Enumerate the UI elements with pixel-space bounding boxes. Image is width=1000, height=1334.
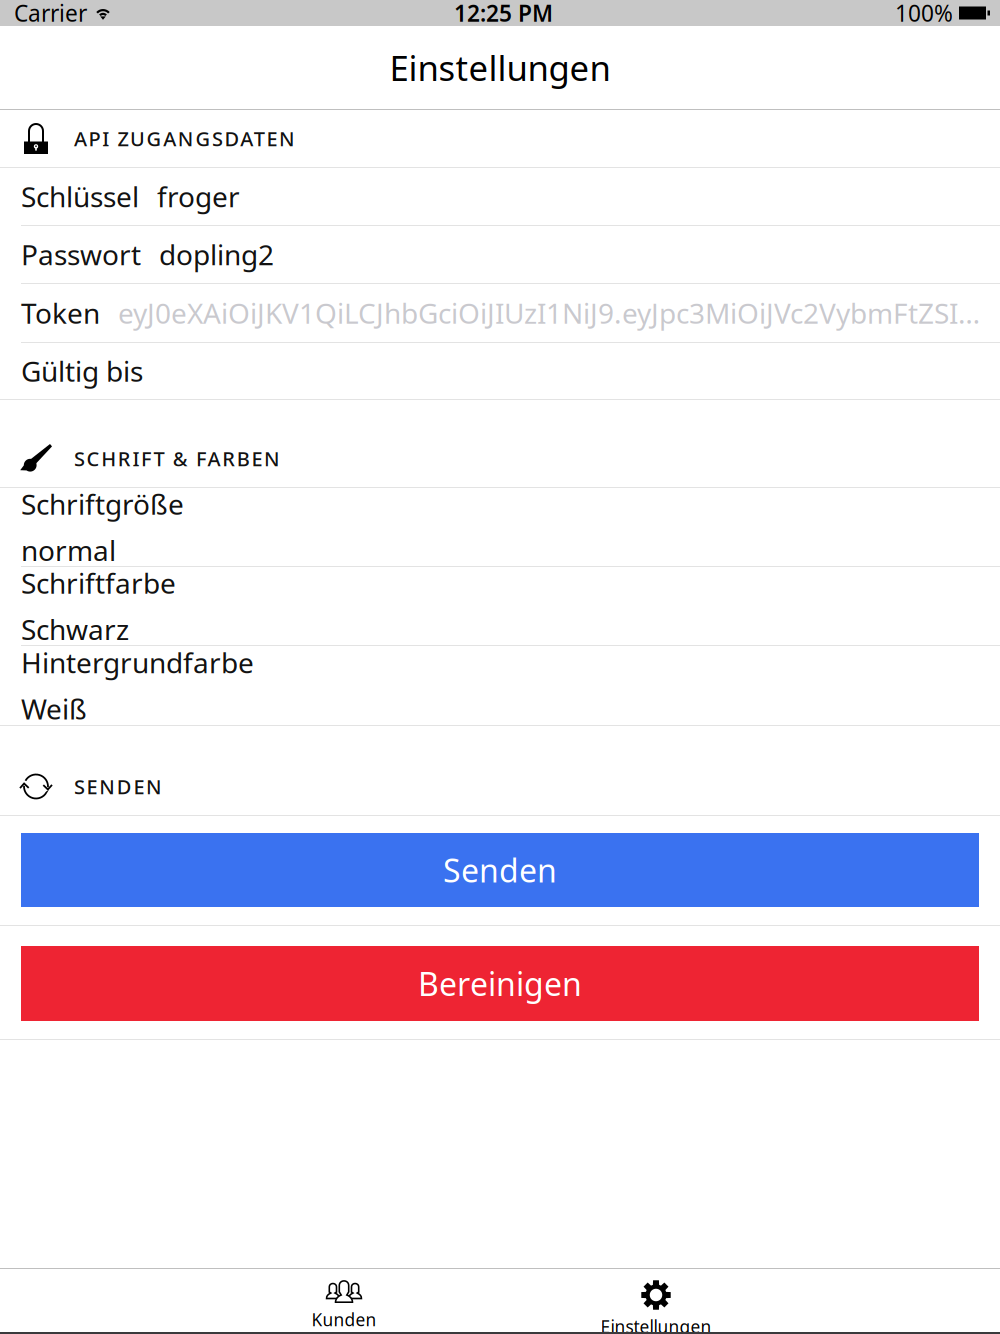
button[interactable]: Senden	[21, 833, 979, 907]
button[interactable]: Schriftgröße	[0, 488, 1000, 566]
staticText: SENDEN	[74, 773, 162, 800]
staticText: Bereinigen	[418, 962, 582, 1005]
staticText: API ZUGANGSDATEN	[74, 125, 295, 152]
staticText: SCHRIFT & FARBEN	[74, 445, 280, 472]
button[interactable]: Einstellungen	[561, 1268, 751, 1333]
staticText: Hintergrundfarbe	[21, 644, 254, 681]
button[interactable]: Kunden	[249, 1268, 439, 1333]
staticText: Senden	[443, 849, 557, 891]
button[interactable]: Gültig bis	[0, 343, 1000, 399]
staticText: eyJ0eXAiOiJKV1QiLCJhbGciOiJIUzI1NiJ9.eyJ…	[118, 294, 982, 332]
staticText: froger	[157, 178, 240, 215]
button[interactable]: Passwort	[0, 226, 1000, 283]
staticText: Einstellungen	[600, 1315, 711, 1334]
staticText: Gültig bis	[21, 352, 143, 390]
staticText: Schriftfarbe	[21, 564, 176, 601]
button[interactable]: Schriftfarbe	[0, 567, 1000, 645]
staticText: normal	[21, 531, 116, 569]
staticText: 12:25 PM	[454, 0, 553, 28]
button[interactable]: Schlüssel	[0, 168, 1000, 225]
staticText: 100%	[895, 0, 953, 28]
staticText: Weiß	[21, 690, 87, 727]
staticText: Passwort	[21, 236, 141, 273]
staticText: Token	[21, 294, 100, 332]
staticText: Schwarz	[21, 610, 129, 648]
staticText: dopling2	[159, 236, 274, 273]
staticText: Einstellungen	[389, 44, 610, 90]
button[interactable]: Hintergrundfarbe	[0, 646, 1000, 725]
button[interactable]: Bereinigen	[21, 946, 979, 1021]
staticText: Schlüssel	[21, 178, 139, 215]
staticText: Carrier	[14, 0, 87, 28]
staticText: Kunden	[311, 1308, 376, 1331]
staticText: Schriftgröße	[21, 485, 184, 522]
button[interactable]: Token	[0, 284, 1000, 342]
